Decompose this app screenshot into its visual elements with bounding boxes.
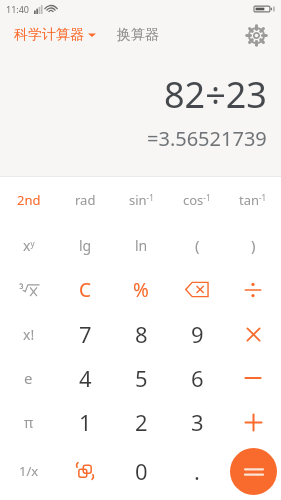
staticText: 2 bbox=[135, 407, 148, 437]
staticText: 11:40 bbox=[6, 3, 30, 15]
staticText: 3 bbox=[191, 407, 204, 437]
staticText: 9 bbox=[191, 319, 204, 349]
button[interactable]: 科学计算器 bbox=[13, 22, 97, 48]
button[interactable]: Equals bbox=[225, 444, 281, 498]
staticText: xy bbox=[23, 236, 35, 255]
button[interactable]: 2 bbox=[113, 400, 169, 444]
button[interactable]: sin-1 bbox=[113, 177, 169, 223]
staticText: % bbox=[133, 277, 149, 303]
staticText: 4 bbox=[79, 363, 92, 393]
staticText: 82÷23 bbox=[164, 70, 267, 119]
staticText: 1/x bbox=[19, 462, 39, 480]
button[interactable]: 9 bbox=[169, 312, 225, 356]
button[interactable]: Equals bbox=[230, 448, 277, 495]
button[interactable]: Multiply bbox=[225, 312, 281, 356]
staticText: =3.56521739 bbox=[147, 125, 267, 152]
staticText: ( bbox=[195, 235, 200, 255]
button[interactable]: Divide bbox=[225, 267, 281, 312]
staticText: 7 bbox=[79, 319, 92, 349]
button[interactable]: e bbox=[0, 356, 57, 400]
button[interactable]: x! bbox=[0, 312, 57, 356]
button[interactable]: 7 bbox=[57, 312, 113, 356]
button[interactable]: 换算器 bbox=[115, 22, 161, 48]
button[interactable]: 4 bbox=[57, 356, 113, 400]
button[interactable]: lg bbox=[57, 223, 113, 267]
button[interactable]: 2nd bbox=[0, 177, 57, 223]
button[interactable]: tan-1 bbox=[225, 177, 281, 223]
staticText: . bbox=[194, 456, 200, 486]
staticText: 1 bbox=[79, 407, 92, 437]
button[interactable]: 1 bbox=[57, 400, 113, 444]
button[interactable]: 6 bbox=[169, 356, 225, 400]
staticText: 换算器 bbox=[117, 26, 159, 44]
button[interactable]: 8 bbox=[113, 312, 169, 356]
button[interactable]: ) bbox=[225, 223, 281, 267]
staticText: sin-1 bbox=[129, 191, 154, 209]
button[interactable]: Plus bbox=[225, 400, 281, 444]
staticText: lg bbox=[79, 236, 92, 255]
button[interactable]: Cube root bbox=[0, 267, 57, 312]
staticText: C bbox=[79, 277, 92, 303]
button[interactable]: . bbox=[169, 444, 225, 498]
button[interactable]: π bbox=[0, 400, 57, 444]
staticText: ) bbox=[251, 235, 256, 255]
staticText: 0 bbox=[135, 456, 148, 486]
button[interactable]: Minus bbox=[225, 356, 281, 400]
staticText: rad bbox=[75, 191, 96, 209]
button[interactable]: xy bbox=[0, 223, 57, 267]
staticText: x! bbox=[23, 325, 35, 344]
staticText: 2nd bbox=[17, 191, 41, 209]
button[interactable]: ln bbox=[113, 223, 169, 267]
staticText: 6 bbox=[191, 363, 204, 393]
button[interactable]: 1/x bbox=[0, 444, 57, 498]
button[interactable]: 3 bbox=[169, 400, 225, 444]
button[interactable]: rad bbox=[57, 177, 113, 223]
staticText: e bbox=[24, 368, 33, 388]
staticText: 科学计算器 bbox=[14, 26, 84, 44]
staticText: tan-1 bbox=[239, 191, 267, 209]
button[interactable]: C bbox=[57, 267, 113, 312]
button[interactable]: cos-1 bbox=[169, 177, 225, 223]
button[interactable]: Backspace bbox=[169, 267, 225, 312]
staticText: cos-1 bbox=[183, 191, 211, 209]
staticText: 5 bbox=[135, 363, 148, 393]
button[interactable]: ( bbox=[169, 223, 225, 267]
staticText: ln bbox=[135, 236, 148, 255]
button[interactable]: 5 bbox=[113, 356, 169, 400]
staticText: π bbox=[24, 413, 34, 432]
button[interactable]: % bbox=[113, 267, 169, 312]
button[interactable]: Settings bbox=[239, 18, 273, 52]
staticText: 8 bbox=[135, 319, 148, 349]
button[interactable]: 0 bbox=[113, 444, 169, 498]
button[interactable]: Convert bbox=[57, 444, 113, 498]
